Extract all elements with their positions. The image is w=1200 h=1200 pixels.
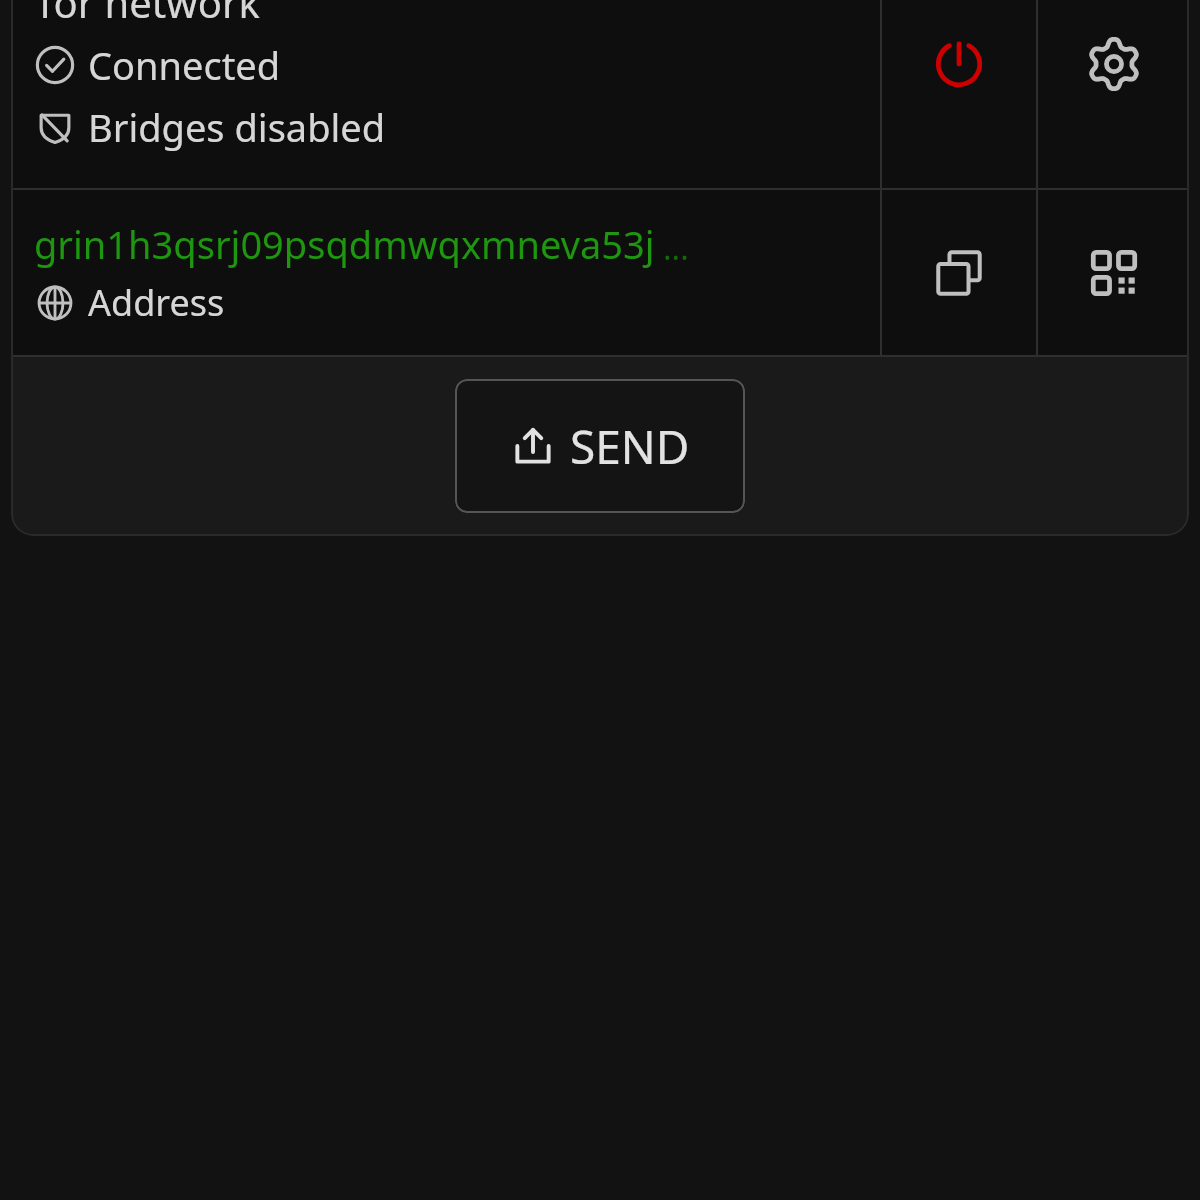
button[interactable]: SEND (455, 379, 745, 513)
button[interactable]: Tor network (11, 0, 880, 188)
staticText: Bridges disabled (88, 101, 386, 153)
staticText: ... (663, 226, 689, 270)
button[interactable]: Copy address (882, 190, 1036, 355)
button[interactable]: Show QR code (1038, 190, 1189, 355)
staticText: SEND (570, 415, 690, 478)
staticText: Address (88, 278, 225, 327)
staticText: grin1h3qsrj09psqdmwqxmneva53j (34, 218, 655, 270)
staticText: Tor network (34, 0, 260, 29)
staticText: Connected (88, 39, 281, 91)
button[interactable]: Settings (1038, 0, 1189, 188)
button[interactable]: grin1h3qsrj09psqdmwqxmneva53j (11, 190, 880, 355)
button[interactable]: Stop Tor (882, 0, 1036, 188)
